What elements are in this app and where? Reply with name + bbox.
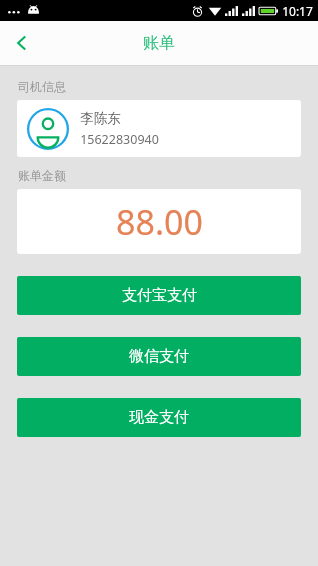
staticText: 现金支付 — [129, 408, 189, 427]
button[interactable]: 李陈东 — [17, 100, 301, 157]
button[interactable]: 现金支付 — [17, 398, 301, 437]
button[interactable]: 支付宝支付 — [17, 276, 301, 315]
staticText: 账单金额 — [18, 168, 66, 183]
staticText: 李陈东 — [80, 110, 121, 127]
staticText: 司机信息 — [18, 79, 66, 94]
button[interactable]: Back — [0, 21, 44, 65]
staticText: 微信支付 — [129, 347, 189, 366]
staticText: 支付宝支付 — [122, 286, 197, 305]
staticText: 账单 — [143, 33, 175, 53]
staticText: 88.00 — [116, 199, 203, 245]
staticText: 10:17 — [282, 3, 313, 19]
staticText: 15622830940 — [80, 131, 159, 148]
button[interactable]: 微信支付 — [17, 337, 301, 376]
